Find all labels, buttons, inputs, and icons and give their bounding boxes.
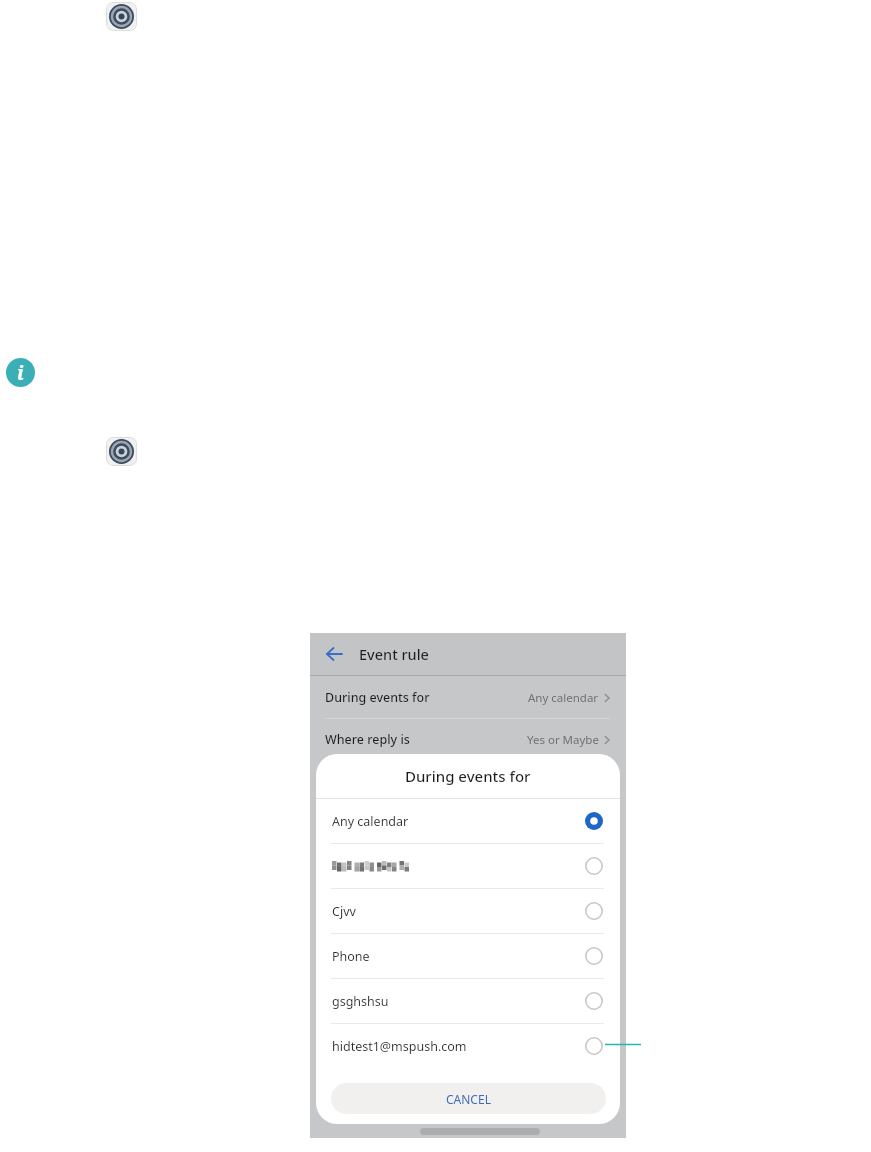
button[interactable]: Where reply is — [325, 719, 610, 760]
staticText: Yes or Maybe — [527, 732, 599, 748]
staticText: During events for — [405, 766, 531, 786]
button[interactable]: Phone — [332, 934, 603, 978]
staticText: Event rule — [359, 644, 429, 664]
button[interactable]: During events for — [325, 677, 610, 718]
staticText: Any calendar — [528, 690, 599, 706]
staticText: Any calendar — [332, 813, 409, 830]
staticText: Cjvv — [332, 903, 356, 920]
staticText: Where reply is — [325, 731, 410, 748]
staticText: i — [17, 360, 24, 386]
staticText: hidtest1@mspush.com — [332, 1038, 467, 1055]
button[interactable] — [326, 647, 343, 661]
button[interactable]: Any calendar — [332, 799, 603, 843]
button[interactable]: Cjvv — [332, 889, 603, 933]
staticText: During events for — [325, 689, 430, 706]
staticText: Phone — [332, 948, 370, 965]
staticText: CANCEL — [446, 1091, 491, 1107]
button[interactable] — [332, 844, 603, 888]
button[interactable]: CANCEL — [331, 1083, 606, 1114]
staticText: gsghshsu — [332, 993, 389, 1010]
button[interactable]: hidtest1@mspush.com — [332, 1024, 603, 1068]
button[interactable]: gsghshsu — [332, 979, 603, 1023]
